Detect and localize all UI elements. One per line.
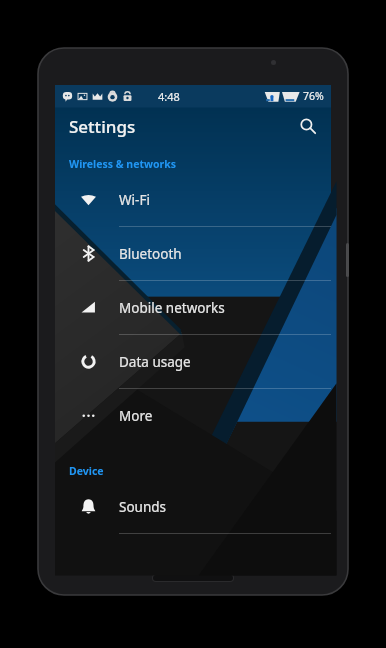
staticText: Wi-Fi	[119, 191, 150, 209]
staticText: Wireless & networks	[69, 157, 176, 171]
button[interactable]: Bluetooth	[55, 227, 331, 280]
staticText: Bluetooth	[119, 245, 182, 263]
button[interactable]: Mobile networks	[55, 281, 331, 334]
button[interactable]: Wi-Fi	[55, 173, 331, 226]
staticText: Sounds	[119, 498, 167, 516]
button[interactable]: Search	[293, 111, 323, 141]
staticText: Data usage	[119, 353, 191, 371]
button[interactable]: Sounds	[55, 480, 331, 533]
staticText: Device	[69, 464, 104, 478]
staticText: More	[119, 407, 153, 425]
button[interactable]: Data usage	[55, 335, 331, 388]
staticText: 4:48	[158, 89, 180, 104]
staticText: Settings	[69, 115, 136, 138]
staticText: 76%	[303, 89, 324, 103]
button[interactable]: More	[55, 389, 331, 442]
staticText: Mobile networks	[119, 299, 225, 317]
